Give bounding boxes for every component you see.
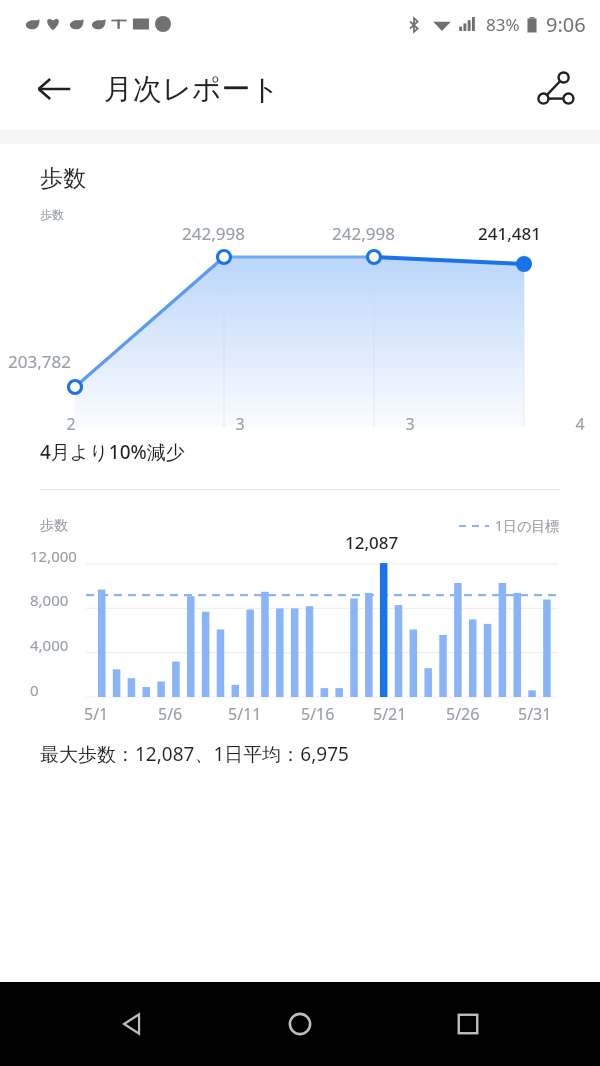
staticText: 3	[235, 413, 245, 435]
staticText: 5/16	[301, 703, 335, 725]
staticText: 203,782	[8, 350, 71, 373]
staticText: 4	[575, 413, 585, 435]
staticText: 歩数	[40, 207, 64, 222]
staticText: 8,000	[30, 590, 69, 610]
staticText: 5/26	[446, 703, 480, 725]
button[interactable]: Back	[30, 65, 78, 113]
button[interactable]: Home	[278, 1002, 322, 1046]
staticText: 5/6	[158, 703, 183, 725]
staticText: 月次レポート	[104, 71, 281, 108]
staticText: 歩数	[40, 164, 86, 193]
button[interactable]: Back	[110, 1002, 154, 1046]
staticText: 9:06	[546, 11, 586, 38]
staticText: 5/21	[373, 703, 407, 725]
staticText: 242,998	[332, 222, 395, 245]
button[interactable]: Share	[530, 65, 578, 113]
staticText: 83%	[486, 13, 520, 36]
staticText: 2	[66, 413, 76, 435]
staticText: 3	[405, 413, 415, 435]
staticText: 12,087	[345, 531, 399, 554]
staticText: 5/11	[228, 703, 262, 725]
staticText: 241,481	[478, 222, 541, 245]
staticText: 4,000	[30, 635, 69, 655]
staticText: 歩数	[40, 517, 68, 535]
button[interactable]: Recents	[446, 1002, 490, 1046]
staticText: 5/31	[518, 703, 552, 725]
staticText: 1日の目標	[495, 516, 560, 535]
staticText: 242,998	[182, 222, 245, 245]
staticText: 5/1	[84, 703, 109, 725]
staticText: 最大歩数：12,087、1日平均：6,975	[40, 741, 349, 767]
staticText: 4月より10%減少	[40, 439, 185, 465]
staticText: 12,000	[30, 546, 77, 566]
staticText: 0	[30, 680, 39, 700]
